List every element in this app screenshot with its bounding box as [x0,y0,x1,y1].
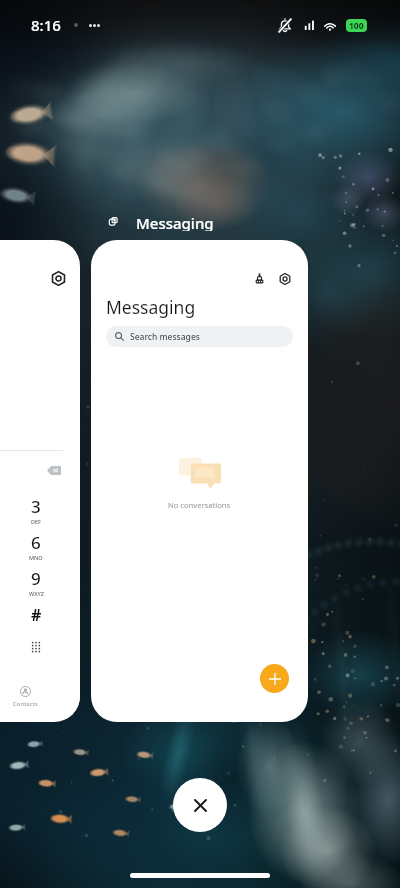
button[interactable]: Settings [273,267,297,291]
button[interactable]: Keypad [21,632,51,662]
staticText: WXYZ [29,590,44,597]
button[interactable]: Clean up [91,240,308,722]
button[interactable]: New conversation [260,664,289,693]
staticText: 3 [31,495,41,518]
button[interactable]: 9 [13,567,59,601]
staticText: 6 [31,531,41,554]
button[interactable]: 3 [13,495,59,529]
button[interactable]: # [18,597,54,633]
button[interactable]: 6 [13,531,59,565]
staticText: No conversations [168,500,231,510]
staticText: 8:16 [31,15,61,35]
button[interactable]: Dialer settings [0,240,80,722]
button[interactable]: Clean up [247,267,271,291]
staticText: MNO [29,554,43,561]
button[interactable]: Close all [173,778,227,832]
button[interactable]: Dialer settings [48,268,68,288]
button[interactable]: Contacts [3,686,47,708]
staticText: DEF [31,518,41,525]
staticText: Messaging [136,213,214,231]
staticText: Contacts [13,700,38,708]
staticText: 9 [31,567,41,590]
staticText: Search messages [130,331,200,343]
staticText: 100 [349,20,364,32]
button[interactable]: Search messages [106,326,293,347]
button[interactable]: Backspace [43,462,65,478]
staticText: Messaging [106,295,196,319]
staticText: # [31,604,42,626]
